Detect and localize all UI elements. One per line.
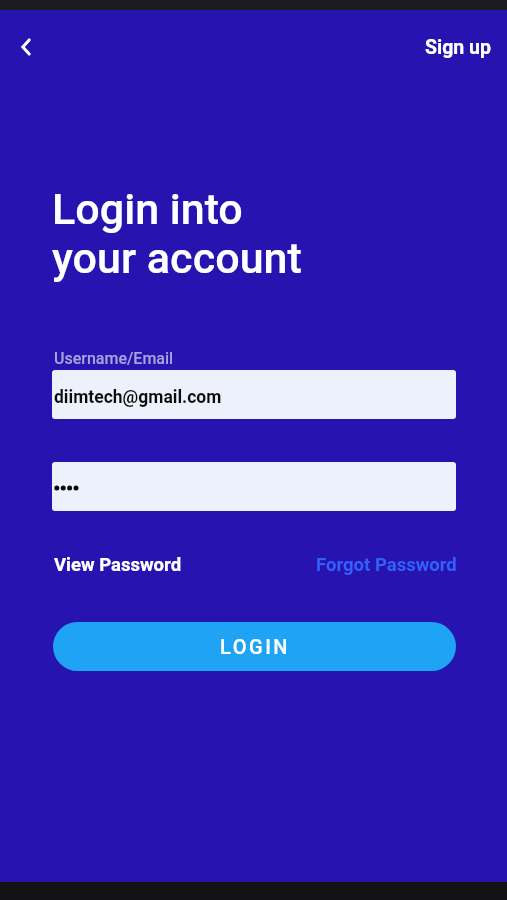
button[interactable]: Sign up	[425, 36, 491, 59]
staticText: Username/Email	[54, 349, 174, 368]
button[interactable]: LOGIN	[53, 622, 456, 671]
button[interactable]: View Password	[54, 554, 182, 576]
button[interactable]: Forgot Password	[316, 554, 457, 576]
staticText: View Password	[54, 554, 182, 576]
staticText: Sign up	[425, 36, 491, 59]
button[interactable]	[14, 35, 38, 59]
staticText: Login into your account	[52, 184, 302, 283]
button[interactable]	[52, 462, 456, 511]
staticText: LOGIN	[220, 635, 290, 658]
staticText: Forgot Password	[316, 554, 457, 576]
staticText: diimtech@gmail.com	[54, 387, 222, 408]
button[interactable]: diimtech@gmail.com	[52, 370, 456, 419]
